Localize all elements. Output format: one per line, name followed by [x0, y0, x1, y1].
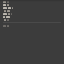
button[interactable] — [3, 13, 59, 15]
button[interactable] — [0, 25, 64, 27]
button[interactable] — [3, 16, 59, 18]
button[interactable] — [3, 7, 59, 9]
other: Scrollable list — [0, 0, 64, 64]
button[interactable] — [3, 19, 59, 21]
button[interactable] — [3, 1, 59, 3]
button[interactable] — [3, 10, 59, 12]
button[interactable] — [3, 4, 59, 6]
